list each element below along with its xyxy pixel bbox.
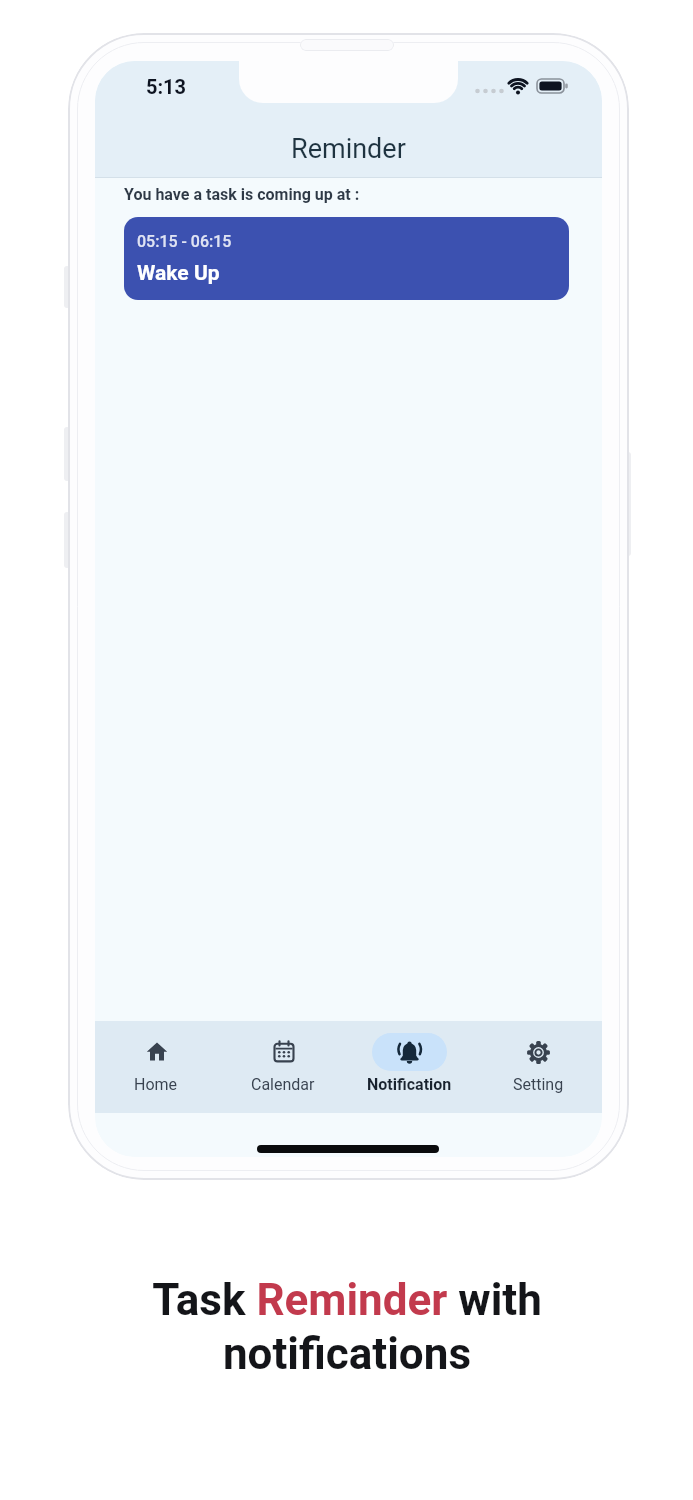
button[interactable]: 05:15 - 06:15 (124, 217, 569, 300)
staticText: Reminder (291, 133, 406, 165)
button[interactable]: Setting (483, 1033, 593, 1117)
button[interactable]: Notification (354, 1033, 464, 1117)
staticText: Wake Up (137, 261, 220, 286)
staticText: Notification (367, 1075, 452, 1094)
button[interactable]: Home (101, 1033, 211, 1117)
button[interactable]: Calendar (228, 1033, 338, 1117)
staticText: Home (134, 1075, 178, 1094)
staticText: 5:13 (146, 75, 187, 98)
staticText: Setting (513, 1075, 564, 1094)
staticText: You have a task is coming up at : (124, 185, 360, 204)
staticText: Calendar (251, 1075, 315, 1094)
staticText: 05:15 - 06:15 (137, 232, 232, 251)
staticText: Task Reminder with notifications (152, 1274, 542, 1379)
